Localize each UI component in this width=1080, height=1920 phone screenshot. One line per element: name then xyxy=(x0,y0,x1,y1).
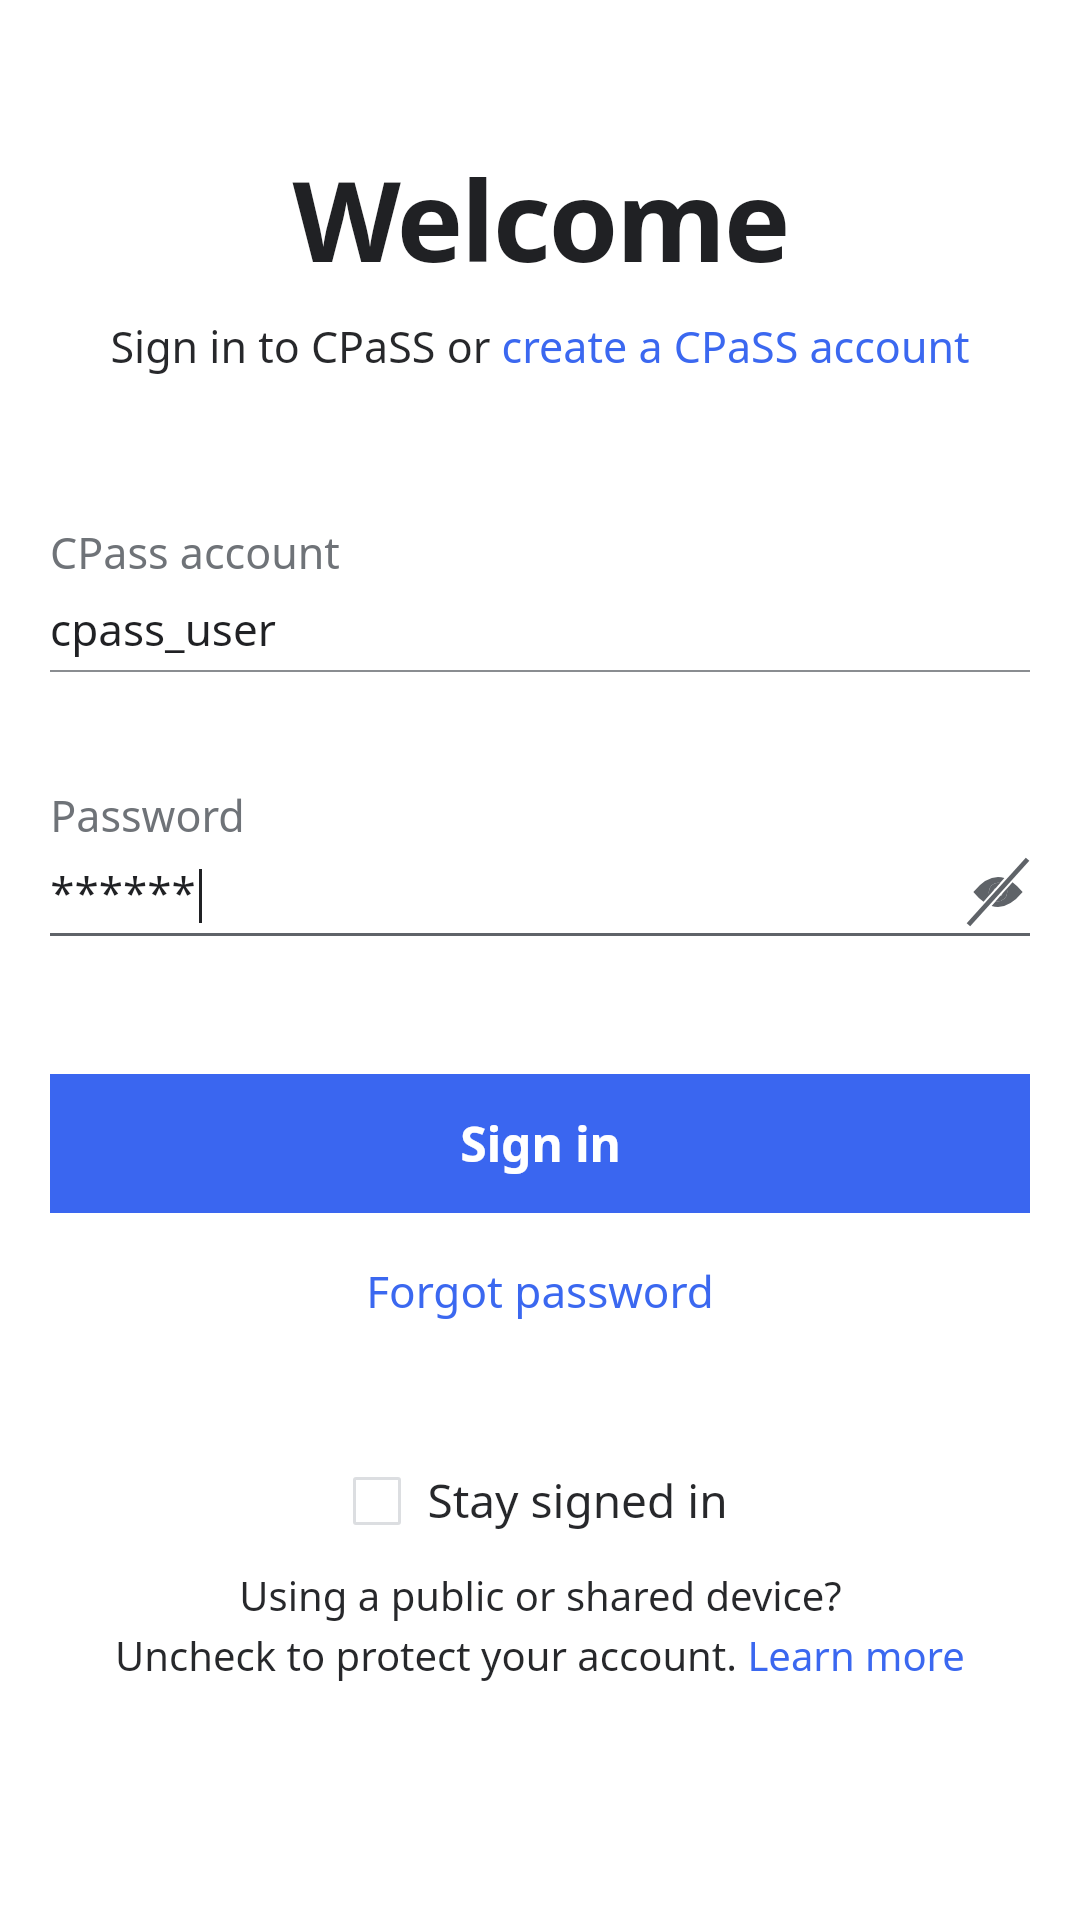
button[interactable]: Stay signed in xyxy=(341,1463,740,1538)
staticText: Sign in to CPaSS or create a CPaSS accou… xyxy=(110,317,970,376)
button[interactable]: Password xyxy=(50,786,1030,936)
staticText: Uncheck to protect your account. Learn m… xyxy=(115,1628,965,1682)
button[interactable]: Uncheck to protect your account. Learn m… xyxy=(0,1628,1080,1682)
button[interactable]: Sign in to CPaSS or create a CPaSS accou… xyxy=(0,317,1080,376)
staticText: Sign in xyxy=(460,1111,621,1176)
staticText: Using a public or shared device? xyxy=(239,1568,842,1622)
button[interactable]: Forgot password xyxy=(342,1251,738,1331)
staticText: ****** xyxy=(50,862,196,922)
staticText: CPass account xyxy=(50,523,340,582)
staticText: Forgot password xyxy=(366,1261,714,1321)
staticText: cpass_user xyxy=(50,599,276,659)
staticText: Password xyxy=(50,786,245,845)
staticText: Welcome xyxy=(292,142,789,295)
staticText: Stay signed in xyxy=(427,1469,728,1532)
button[interactable]: CPass account xyxy=(50,523,1030,672)
button[interactable]: Show password xyxy=(966,861,1030,923)
button[interactable]: Sign in xyxy=(50,1074,1030,1213)
